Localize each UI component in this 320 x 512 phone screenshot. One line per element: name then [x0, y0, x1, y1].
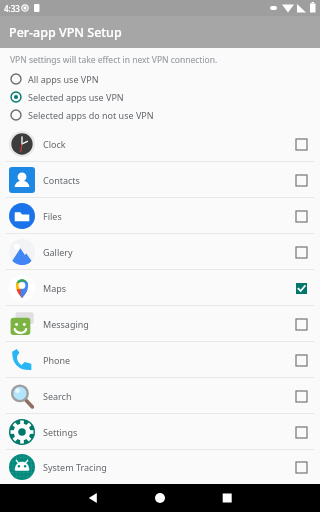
- button[interactable]: Selected apps use VPN: [0, 88, 320, 106]
- staticText: Selected apps do not use VPN: [28, 109, 154, 121]
- button[interactable]: Maps: [0, 270, 320, 305]
- staticText: Selected apps use VPN: [28, 91, 124, 103]
- staticText: Messaging: [43, 318, 291, 330]
- button[interactable]: Unchecked: [291, 314, 311, 334]
- staticText: All apps use VPN: [28, 73, 99, 85]
- staticText: Files: [43, 210, 291, 222]
- staticText: Clock: [43, 138, 291, 150]
- button[interactable]: Unchecked: [291, 350, 311, 370]
- button[interactable]: Settings: [0, 414, 320, 449]
- staticText: Phone: [43, 354, 291, 366]
- button[interactable]: Unchecked: [291, 386, 311, 406]
- button[interactable]: Checked: [291, 278, 311, 298]
- button[interactable]: Gallery: [0, 234, 320, 269]
- staticText: Contacts: [43, 174, 291, 186]
- staticText: Per-app VPN Setup: [9, 24, 122, 41]
- button[interactable]: Clock: [0, 126, 320, 161]
- button[interactable]: System Tracing: [0, 450, 320, 484]
- button[interactable]: Unchecked: [291, 422, 311, 442]
- staticText: Gallery: [43, 246, 291, 258]
- button[interactable]: Unchecked: [291, 242, 311, 262]
- button[interactable]: Search: [0, 378, 320, 413]
- staticText: Search: [43, 390, 291, 402]
- staticText: VPN settings will take effect in next VP…: [10, 54, 218, 66]
- button[interactable]: Contacts: [0, 162, 320, 197]
- staticText: System Tracing: [43, 461, 291, 473]
- button[interactable]: Unchecked: [291, 457, 311, 477]
- staticText: Maps: [43, 282, 291, 294]
- staticText: Settings: [43, 426, 291, 438]
- button[interactable]: Unchecked: [291, 170, 311, 190]
- button[interactable]: Selected apps do not use VPN: [0, 106, 320, 124]
- staticText: 4:33: [4, 3, 20, 14]
- button[interactable]: Messaging: [0, 306, 320, 341]
- button[interactable]: Unchecked: [291, 134, 311, 154]
- button[interactable]: All apps use VPN: [0, 70, 320, 88]
- button[interactable]: Unchecked: [291, 206, 311, 226]
- button[interactable]: Phone: [0, 342, 320, 377]
- button[interactable]: Files: [0, 198, 320, 233]
